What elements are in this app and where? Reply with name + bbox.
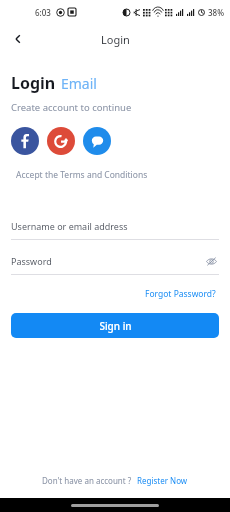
staticText: Email — [61, 74, 97, 93]
button[interactable]: Register Now — [137, 475, 188, 486]
staticText: Username or email address — [11, 220, 128, 232]
button[interactable]: Username or email address — [11, 216, 219, 236]
staticText: Login — [11, 72, 56, 94]
staticText: Login — [101, 32, 130, 47]
button[interactable]: Forgot Password? — [142, 285, 219, 303]
button[interactable]: Sign in — [11, 313, 219, 338]
staticText: Register Now — [137, 475, 188, 486]
staticText: 38% — [208, 7, 224, 18]
staticText: Password — [11, 255, 52, 267]
staticText: Don't have an account ? — [42, 475, 132, 486]
button[interactable]: Password — [11, 251, 219, 271]
button[interactable]: Sign in with Messenger — [83, 127, 111, 155]
button[interactable]: Sign in with Google — [47, 127, 75, 155]
staticText: Sign in — [99, 319, 132, 333]
staticText: Create account to continue — [11, 101, 132, 114]
staticText: Forgot Password? — [145, 288, 216, 300]
button[interactable]: Back — [6, 27, 30, 51]
button[interactable]: Sign in with Facebook — [11, 127, 39, 155]
button[interactable]: Show password — [203, 253, 219, 269]
staticText: 6:03 — [35, 7, 51, 18]
button[interactable]: Accept the Terms and Conditions — [16, 169, 148, 181]
